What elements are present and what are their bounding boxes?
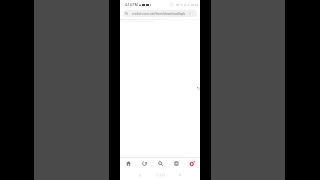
staticText: cricket.com.net/from/download/apk [132, 12, 186, 16]
button[interactable]: cricket.com.net/from/download/apk [123, 10, 197, 17]
button[interactable]: Recents [172, 169, 188, 180]
button[interactable]: Back [132, 169, 148, 180]
button[interactable]: Tabs [168, 157, 184, 169]
button[interactable]: Search [152, 157, 168, 169]
staticText: 4:14 PM [125, 2, 138, 7]
button[interactable]: Home [152, 169, 168, 180]
button[interactable]: Home [120, 157, 136, 169]
button[interactable]: Opera menu [184, 157, 200, 169]
button[interactable]: Reload [136, 157, 152, 169]
